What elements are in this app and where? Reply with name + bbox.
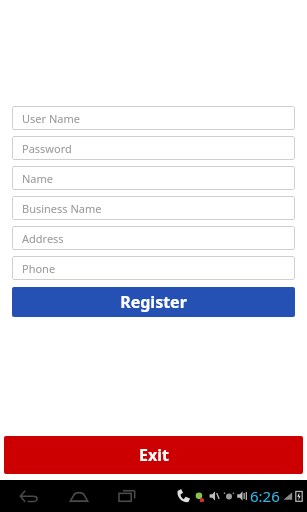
staticText: Name bbox=[22, 171, 54, 186]
button[interactable]: Recent apps bbox=[110, 482, 144, 510]
button[interactable]: User Name bbox=[12, 106, 295, 130]
button[interactable]: Home bbox=[62, 482, 96, 510]
button[interactable]: Name bbox=[12, 166, 295, 190]
staticText: Exit bbox=[139, 444, 169, 466]
staticText: Business Name bbox=[22, 201, 102, 216]
button[interactable]: Phone bbox=[12, 256, 295, 280]
staticText: Password bbox=[22, 141, 72, 156]
button[interactable]: Register bbox=[12, 287, 295, 317]
staticText: Register bbox=[120, 291, 187, 313]
staticText: 6:26 bbox=[250, 486, 280, 506]
staticText: User Name bbox=[22, 111, 80, 126]
staticText: Address bbox=[22, 231, 64, 246]
button[interactable]: Business Name bbox=[12, 196, 295, 220]
button[interactable]: Address bbox=[12, 226, 295, 250]
staticText: Phone bbox=[22, 261, 56, 276]
button[interactable]: Back bbox=[12, 482, 46, 510]
button[interactable]: Password bbox=[12, 136, 295, 160]
button[interactable]: Exit bbox=[4, 436, 303, 474]
